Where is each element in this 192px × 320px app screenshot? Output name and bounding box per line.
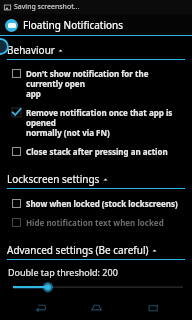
staticText: Behaviour — [7, 43, 55, 57]
button[interactable]: Show when locked (stock lockscreens) — [0, 193, 192, 211]
staticText: Don't show notification for the currentl… — [26, 68, 184, 99]
button[interactable]: Home — [79, 294, 113, 320]
button[interactable]: Double tap threshold slider — [0, 283, 192, 294]
button[interactable]: Advanced settings (Be careful) — [0, 239, 192, 260]
staticText: Close stack after pressing an action — [26, 146, 168, 157]
staticText: Show when locked (stock lockscreens) — [26, 198, 178, 209]
staticText: Lockscreen settings — [7, 172, 100, 186]
button[interactable]: Back — [23, 294, 57, 320]
staticText: Double tap threshold: 200 — [8, 266, 118, 278]
staticText: Hide notification text when locked — [26, 217, 164, 228]
button[interactable]: Remove notification once that app is ope… — [0, 101, 192, 140]
button[interactable]: Floating Notifications — [0, 14, 192, 36]
button[interactable]: Close stack after pressing an action — [0, 140, 192, 159]
staticText: Advanced settings (Be careful) — [7, 243, 149, 257]
button[interactable]: Hide notification text when locked — [0, 211, 192, 230]
button[interactable]: Recent apps — [136, 294, 170, 320]
button[interactable]: Behaviour — [0, 39, 192, 60]
staticText: Remove notification once that app is ope… — [26, 107, 184, 138]
button[interactable]: Lockscreen settings — [0, 168, 192, 189]
button[interactable]: Don't show notification for the currentl… — [0, 63, 192, 101]
staticText: Saving screenshot... — [14, 2, 80, 12]
staticText: Floating Notifications — [23, 18, 124, 32]
